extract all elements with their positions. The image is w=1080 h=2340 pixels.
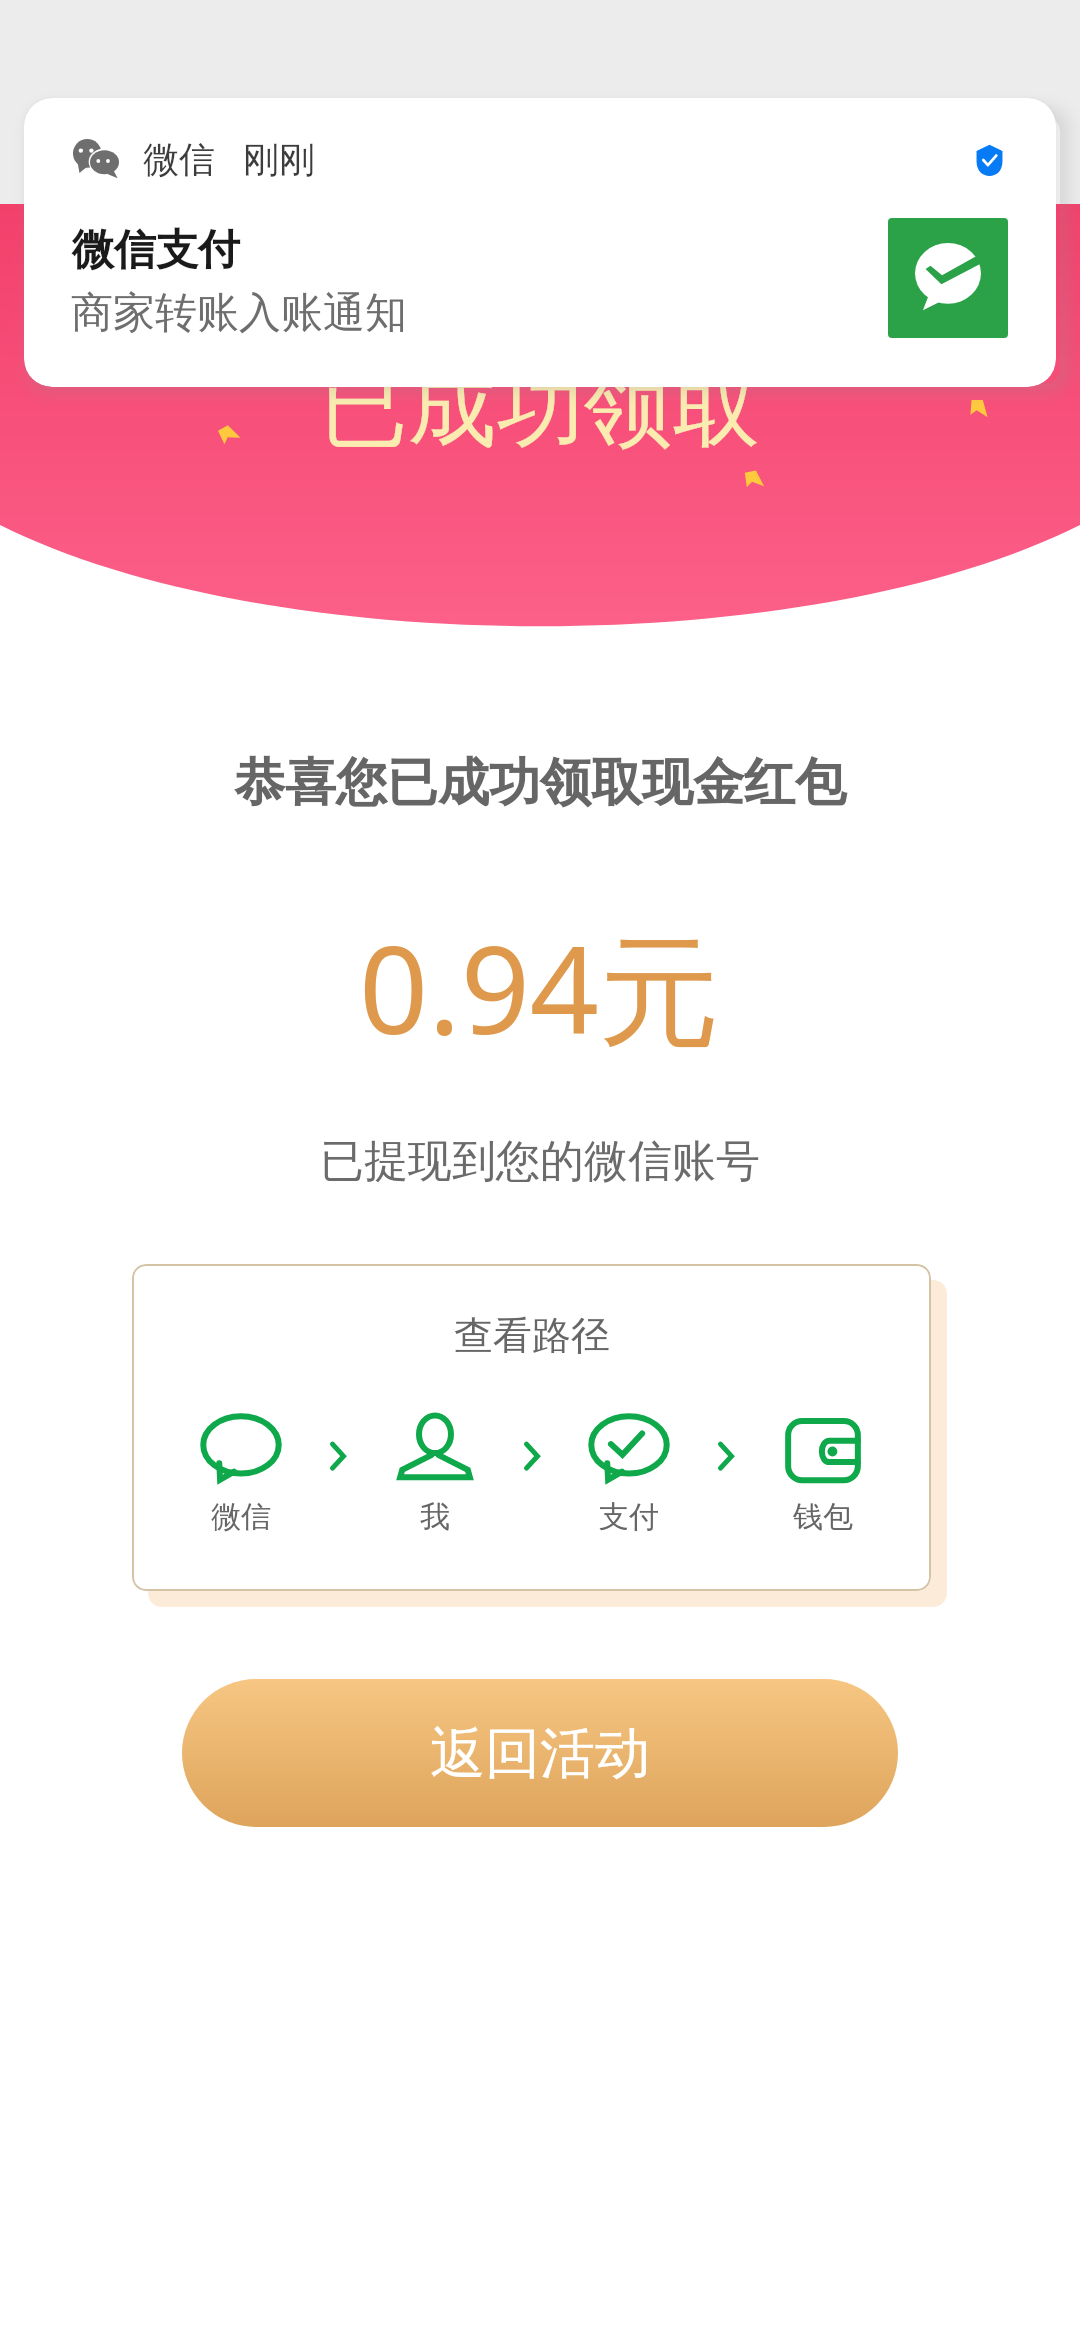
other: Verified: [976, 144, 1003, 176]
staticText: 微信支付: [72, 224, 240, 277]
staticText: 已提现到您的微信账号: [320, 1134, 760, 1189]
button[interactable]: 微信 刚刚: [24, 98, 1056, 387]
button[interactable]: 返回活动: [182, 1679, 898, 1827]
staticText: 微信 刚刚: [143, 134, 316, 183]
staticText: 我: [420, 1498, 450, 1536]
staticText: 钱包: [793, 1498, 853, 1536]
staticText: 0.94元: [359, 905, 721, 1070]
staticText: 商家转账入账通知: [71, 287, 407, 340]
button[interactable]: 微信: [184, 1408, 298, 1536]
staticText: 已成功领取: [320, 352, 760, 463]
button[interactable]: 支付: [572, 1408, 686, 1536]
staticText: 支付: [599, 1498, 659, 1536]
button[interactable]: 钱包: [766, 1408, 880, 1536]
staticText: 返回活动: [430, 1719, 650, 1788]
staticText: 查看路径: [454, 1311, 610, 1360]
button[interactable]: 我: [378, 1408, 492, 1536]
button[interactable]: 查看路径: [132, 1264, 931, 1591]
staticText: 微信: [211, 1498, 271, 1536]
staticText: 恭喜您已成功领取现金红包: [234, 751, 846, 815]
